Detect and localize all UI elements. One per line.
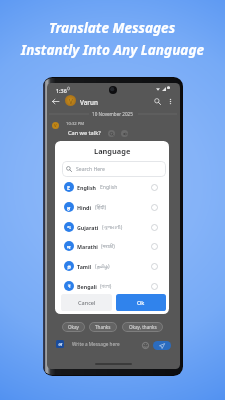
- button[interactable]: Ok: [116, 294, 166, 311]
- button[interactable]: த: [55, 256, 169, 276]
- staticText: Ok: [137, 299, 145, 307]
- staticText: (मराठी): [101, 243, 115, 250]
- button[interactable]: ह: [55, 197, 169, 217]
- staticText: E: [67, 184, 71, 191]
- button[interactable]: Okay: [62, 322, 85, 332]
- staticText: Search Here: [76, 166, 105, 173]
- button[interactable]: Back: [50, 96, 61, 107]
- staticText: (हिंदी): [95, 204, 107, 211]
- button[interactable]: ব: [55, 276, 169, 296]
- staticText: Hindi: [77, 204, 92, 211]
- staticText: V: [69, 97, 73, 105]
- staticText: ગ: [67, 223, 71, 232]
- staticText: म: [67, 243, 71, 250]
- button[interactable]: Emoji: [142, 342, 149, 349]
- button[interactable]: Cancel: [61, 294, 112, 311]
- staticText: (ગુજરાતી): [102, 224, 123, 231]
- button[interactable]: म: [55, 236, 169, 256]
- button[interactable]: Play audio: [121, 130, 128, 137]
- staticText: (বাংলা): [100, 283, 112, 290]
- staticText: Language: [94, 146, 131, 156]
- staticText: Can we talk?: [68, 129, 101, 137]
- staticText: English: [77, 184, 97, 191]
- staticText: ह: [67, 204, 71, 211]
- button[interactable]: Send: [153, 341, 171, 350]
- button[interactable]: Search: [152, 96, 163, 107]
- staticText: ব: [68, 284, 71, 289]
- button[interactable]: E: [55, 177, 169, 197]
- staticText: Thanks: [95, 324, 111, 330]
- staticText: Instantly Into Any Language: [21, 40, 205, 59]
- staticText: Translate Messages: [49, 18, 176, 37]
- button[interactable]: More options: [165, 96, 176, 107]
- staticText: Gujarati: [77, 224, 99, 231]
- button[interactable]: Translate: [56, 340, 64, 348]
- staticText: த: [67, 264, 71, 269]
- staticText: Marathi: [77, 243, 98, 250]
- staticText: 1:36: [56, 87, 67, 94]
- staticText: Varun: [80, 98, 98, 107]
- button[interactable]: Thanks: [89, 322, 117, 332]
- staticText: Cancel: [78, 299, 96, 307]
- staticText: (தமிழ்): [95, 263, 110, 270]
- button[interactable]: Okay, thanks: [122, 322, 163, 332]
- button[interactable]: ગ: [55, 217, 169, 237]
- button[interactable]: Translate message: [108, 130, 115, 137]
- staticText: V: [54, 123, 57, 129]
- staticText: Tamil: [77, 263, 92, 270]
- staticText: अ: [58, 341, 63, 348]
- staticText: 10 November 2025: [92, 111, 133, 117]
- staticText: Okay: [68, 324, 79, 330]
- staticText: 10:32 PM: [66, 121, 85, 127]
- button[interactable]: Search Here: [62, 161, 166, 177]
- staticText: Okay, thanks: [129, 324, 157, 330]
- staticText: English: [100, 184, 118, 191]
- staticText: Write a Message here: [72, 341, 120, 347]
- staticText: Bengali: [77, 283, 97, 290]
